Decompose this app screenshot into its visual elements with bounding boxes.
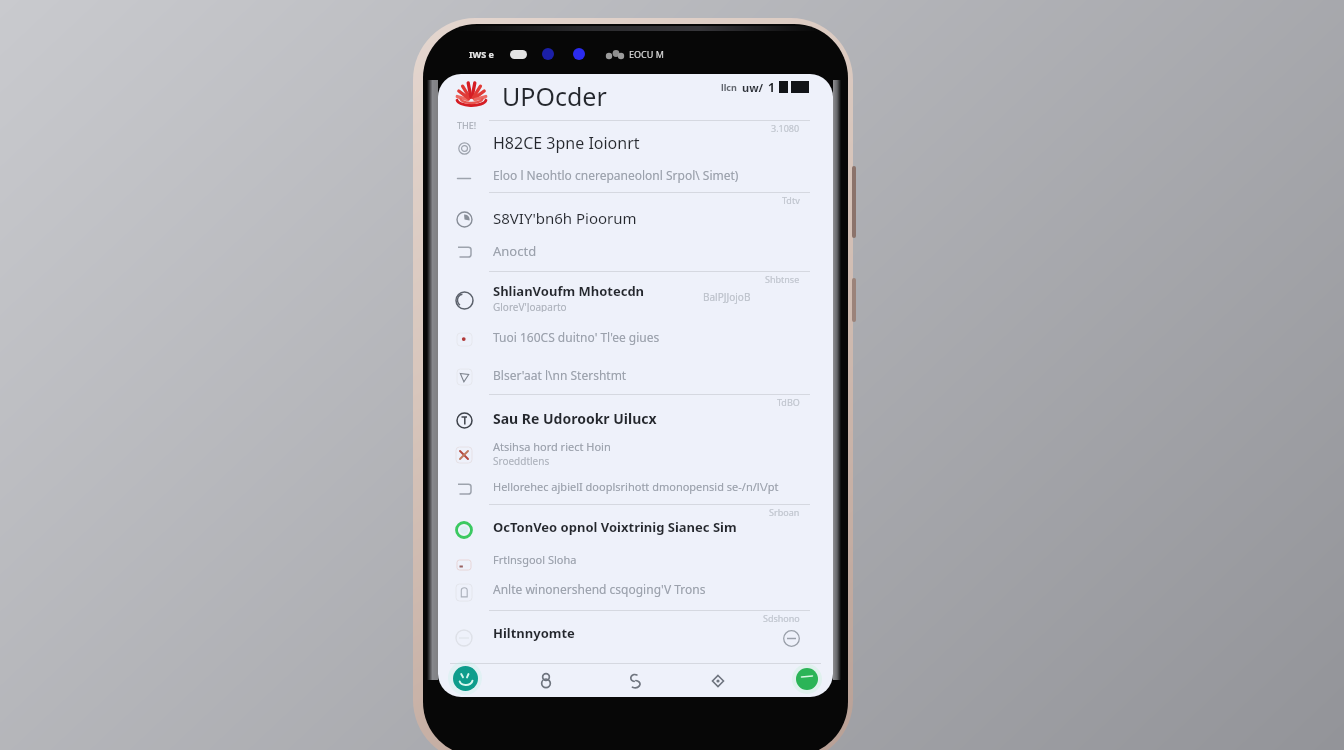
button[interactable]: Frtlnsgool Sloha <box>438 544 833 574</box>
button[interactable]: Hellorehec ajbielI dooplsrihott dmonopen… <box>438 471 833 501</box>
button[interactable]: OcTonVeo opnol Voixtrinig Sianec Sim <box>438 512 833 542</box>
button[interactable]: Anoctd <box>438 236 833 266</box>
staticText: IWS e <box>469 48 494 60</box>
staticText: GloreV'Joaparto <box>493 300 567 312</box>
staticText: Anlte winonershend csqoging'V Trons <box>493 581 706 597</box>
staticText: llcn <box>721 81 737 93</box>
staticText: TdBO <box>777 396 800 408</box>
staticText: OcTonVeo opnol Voixtrinig Sianec Sim <box>493 518 737 536</box>
button[interactable]: Explore <box>702 665 734 697</box>
staticText: Sroeddtlens <box>493 454 550 468</box>
staticText: BalPJJojoB <box>703 290 751 304</box>
staticText: Blser'aat l\nn Stershtmt <box>493 367 627 383</box>
staticText: Eloo l Neohtlo cnerepaneolonl Srpol\ Sim… <box>493 167 739 183</box>
staticText: UPOcder <box>502 79 607 113</box>
button[interactable]: S8VIY'bn6h Pioorum <box>438 203 833 233</box>
button[interactable]: Hiltnnyomte <box>438 618 833 648</box>
staticText: 1 <box>768 79 775 95</box>
button[interactable]: Atsihsa hord riect Hoin <box>438 438 833 468</box>
staticText: Sau Re Udorookr Uilucx <box>493 409 657 428</box>
staticText: Srboan <box>769 506 800 518</box>
staticText: 3.1080 <box>771 122 800 134</box>
button[interactable]: Refresh <box>619 665 651 697</box>
staticText: Atsihsa hord riect Hoin <box>493 439 611 454</box>
button[interactable]: Anlte winonershend csqoging'V Trons <box>438 574 833 604</box>
staticText: Tuoi 160CS duitno' Tl'ee giues <box>493 329 660 345</box>
staticText: Frtlnsgool Sloha <box>493 552 577 567</box>
button[interactable]: Contacts <box>530 664 562 696</box>
staticText: THE! <box>457 119 477 131</box>
button[interactable]: Eloo l Neohtlo cnerepaneolonl Srpol\ Sim… <box>438 160 833 190</box>
staticText: Shbtnse <box>765 273 800 285</box>
button[interactable]: Sau Re Udorookr Uilucx <box>438 403 833 433</box>
button[interactable]: Blser'aat l\nn Stershtmt <box>438 360 833 390</box>
button[interactable]: Home <box>448 661 482 695</box>
staticText: S8VIY'bn6h Pioorum <box>493 208 637 228</box>
staticText: Anoctd <box>493 242 537 260</box>
staticText: Sdshono <box>763 612 800 624</box>
button[interactable]: Tuoi 160CS duitno' Tl'ee giues <box>438 322 833 352</box>
staticText: ShlianVoufm Mhotecdn <box>493 282 645 300</box>
staticText: EOCU M <box>629 48 664 60</box>
staticText: Tdtv <box>782 194 800 206</box>
staticText: Hiltnnyomte <box>493 624 575 642</box>
button[interactable]: H82CE 3pne Ioionrt <box>438 128 833 158</box>
button[interactable]: ShlianVoufm Mhotecdn <box>438 282 833 312</box>
staticText: H82CE 3pne Ioionrt <box>493 132 640 154</box>
staticText: uw/ <box>742 80 764 95</box>
button[interactable]: Profile <box>792 664 822 694</box>
staticText: Hellorehec ajbielI dooplsrihott dmonopen… <box>493 479 779 494</box>
